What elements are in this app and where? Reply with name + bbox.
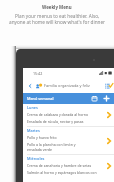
staticText: Miércoles [27, 156, 45, 161]
button[interactable]: Lunes [23, 104, 114, 126]
button[interactable]: Shopping list [103, 80, 114, 91]
staticText: Pollo a la plancha con limón y [27, 142, 76, 147]
staticText: Martes [27, 128, 40, 133]
staticText: Weekly Menu [42, 4, 72, 10]
button[interactable]: Miércoles [23, 155, 114, 177]
staticText: Plan your menus to eat healthier. Also, [15, 13, 100, 19]
staticText: Lunes [27, 105, 38, 110]
staticText: 15:42 [33, 71, 43, 76]
staticText: Familia organizada y feliz [44, 83, 90, 88]
staticText: Crema de zanahoria y hambre de setas [27, 163, 92, 168]
button[interactable]: Back [26, 82, 33, 89]
staticText: ensalada verde [27, 147, 52, 152]
staticText: Crema de calabaza y dorada al horno [27, 112, 89, 117]
button[interactable]: Add [102, 94, 111, 103]
button[interactable]: Calendar [90, 94, 99, 103]
staticText: Menú semanal [27, 96, 54, 101]
button[interactable]: Martes [23, 127, 114, 154]
staticText: Salmón al horno y espárragos blancos con… [27, 170, 103, 175]
staticText: Pollo y huevo frito [27, 135, 57, 140]
staticText: Ensalada de rúcula, nectar y pasas [27, 119, 84, 124]
staticText: anyone at home will know what's for dinn… [9, 19, 106, 25]
